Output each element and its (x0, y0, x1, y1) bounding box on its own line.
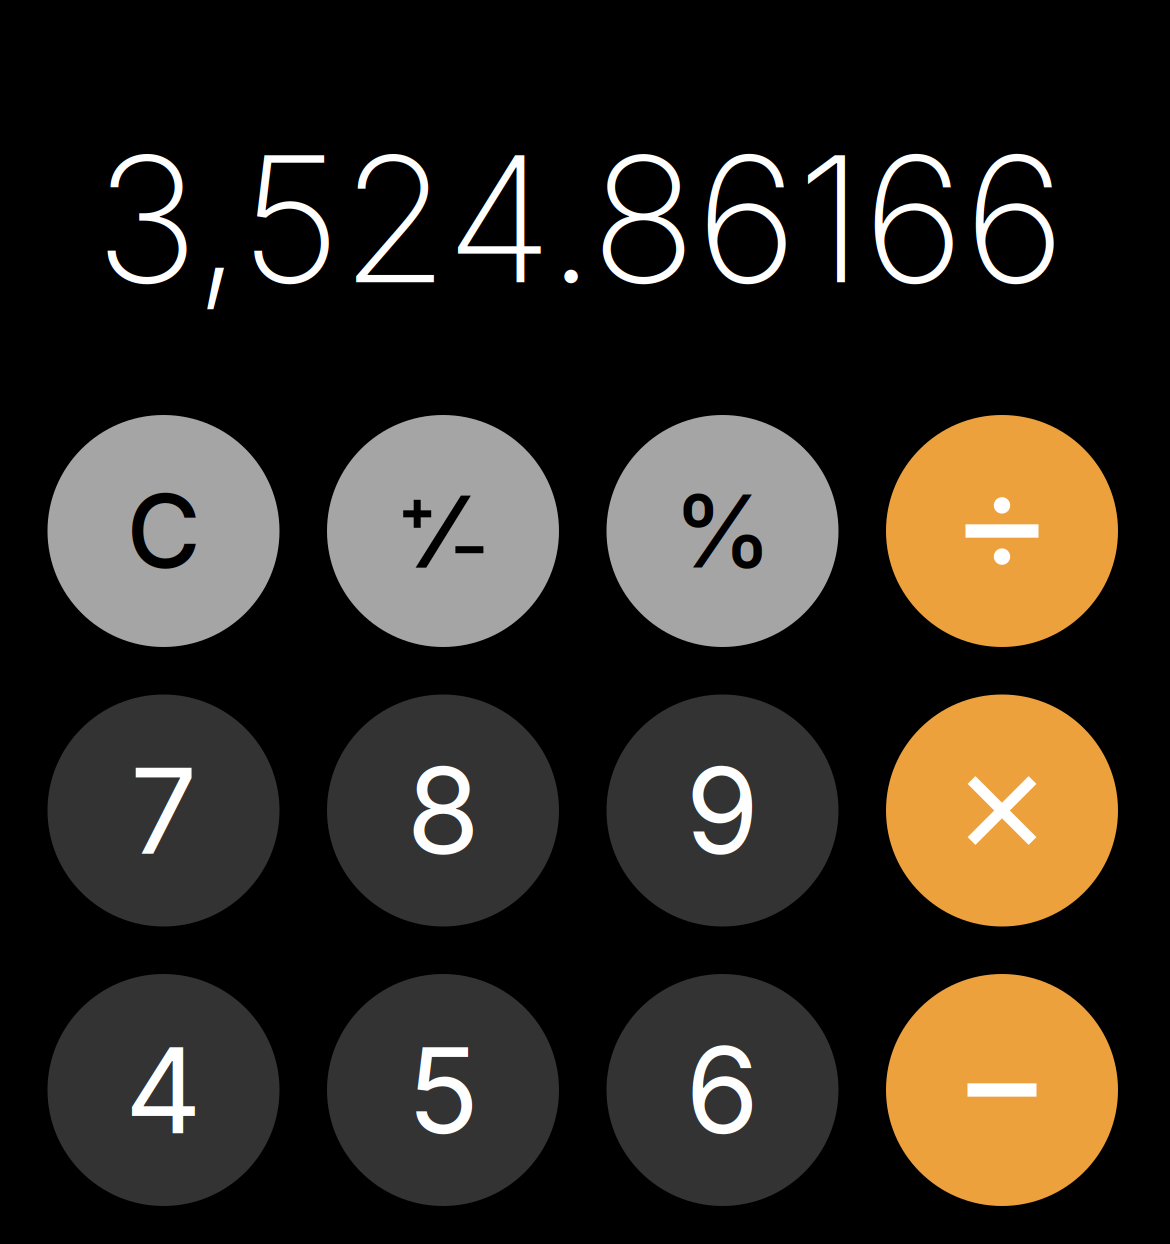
button[interactable]: 7 (47, 694, 279, 926)
button[interactable]: 9 (606, 694, 838, 926)
button[interactable]: Subtract (886, 974, 1118, 1206)
staticText: 5 (407, 1018, 479, 1162)
button[interactable]: Plus minus (327, 415, 559, 647)
staticText: 6 (685, 1018, 759, 1162)
staticText: % (673, 470, 772, 591)
button[interactable]: % (606, 415, 838, 647)
staticText: 9 (685, 739, 759, 882)
staticText: 4 (125, 1018, 202, 1162)
button[interactable]: 6 (606, 974, 838, 1206)
button[interactable]: Multiply (886, 694, 1118, 926)
button[interactable]: Divide (886, 415, 1118, 647)
button[interactable]: 4 (47, 974, 279, 1206)
staticText: C (126, 470, 200, 592)
staticText: 3,524.86166 (95, 114, 1065, 324)
button[interactable]: 5 (327, 974, 559, 1206)
staticText: 8 (406, 739, 479, 882)
button[interactable]: C (47, 415, 279, 647)
button[interactable]: 8 (327, 694, 559, 926)
staticText: 7 (130, 739, 197, 882)
